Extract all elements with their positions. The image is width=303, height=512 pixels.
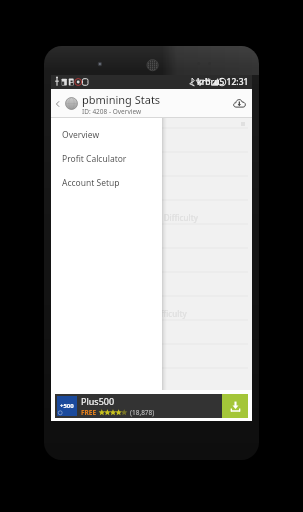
button[interactable]: Navigate up xyxy=(51,89,65,118)
staticText: +500 xyxy=(60,402,74,410)
staticText: Profit Calculator xyxy=(62,153,127,165)
staticText: Plus500 xyxy=(81,395,115,407)
staticText: (18,878) xyxy=(130,408,155,417)
button[interactable]: Overview xyxy=(51,123,162,147)
button[interactable]: Account Setup xyxy=(51,171,162,195)
staticText: pbmining Stats xyxy=(82,92,161,107)
staticText: Overview xyxy=(62,129,100,141)
button[interactable]: Profit Calculator xyxy=(51,147,162,171)
staticText: Estimated Profit at Current Difficulty xyxy=(59,212,198,223)
button[interactable]: +500 xyxy=(55,394,248,418)
staticText: Estimated Profit at Next Difficulty xyxy=(59,308,187,319)
staticText: FREE xyxy=(81,408,97,417)
staticText: ID: 4208 - Overview xyxy=(82,107,142,116)
button[interactable]: Install xyxy=(222,394,248,418)
staticText: Account Setup xyxy=(62,177,120,189)
staticText: krbru5 12:31 xyxy=(197,76,249,88)
button[interactable]: Refresh data xyxy=(226,89,252,118)
